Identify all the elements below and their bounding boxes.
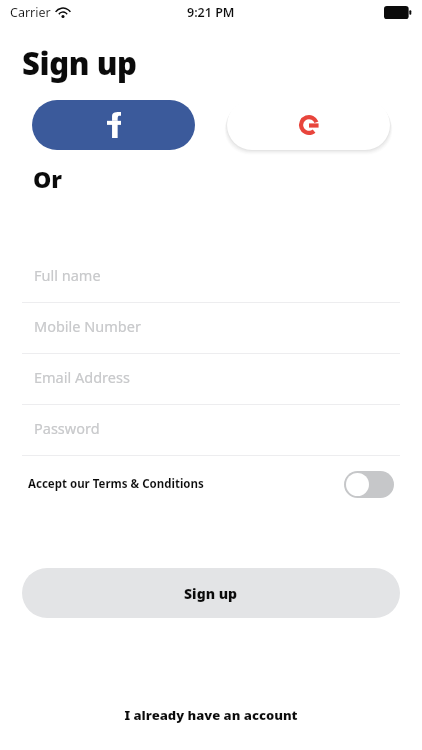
button[interactable]: Mobile Number xyxy=(22,303,400,354)
button[interactable]: Password xyxy=(22,405,400,456)
button[interactable]: I already have an account xyxy=(0,698,422,732)
staticText: Mobile Number xyxy=(34,316,141,336)
staticText: Password xyxy=(34,418,100,438)
staticText: Sign up xyxy=(22,42,137,84)
staticText: Email Address xyxy=(34,367,130,387)
staticText: I already have an account xyxy=(124,706,298,724)
button[interactable]: Sign up with Facebook xyxy=(32,100,195,150)
button[interactable]: Email Address xyxy=(22,354,400,405)
staticText: Carrier xyxy=(10,4,51,21)
button[interactable]: Accept terms toggle xyxy=(344,471,394,498)
staticText: Accept our Terms & Conditions xyxy=(28,476,204,492)
staticText: Sign up xyxy=(184,584,238,603)
button[interactable]: Full name xyxy=(22,252,400,303)
staticText: Or xyxy=(33,163,62,194)
button[interactable]: Sign up with Google xyxy=(227,100,390,150)
button[interactable]: Accept our Terms & Conditions xyxy=(22,464,400,504)
button[interactable]: Sign up xyxy=(22,568,400,618)
staticText: Full name xyxy=(34,265,101,285)
staticText: 9:21 PM xyxy=(187,4,235,21)
